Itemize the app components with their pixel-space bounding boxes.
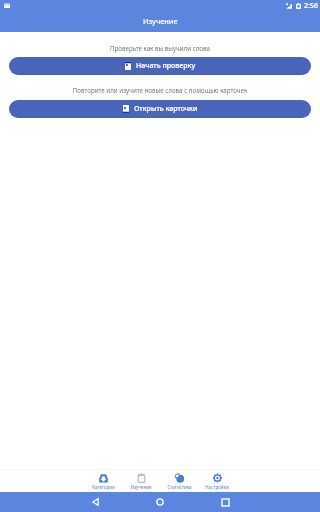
staticText: Статистика xyxy=(167,484,192,490)
button[interactable]: Настройки xyxy=(198,473,236,490)
staticText: Изучение xyxy=(143,16,178,26)
staticText: Настройки xyxy=(205,484,229,490)
staticText: Категории xyxy=(92,484,115,490)
staticText: Начать проверку xyxy=(136,61,196,71)
button[interactable]: Начать проверку xyxy=(9,57,311,75)
button[interactable]: Категории xyxy=(84,473,122,490)
button[interactable]: Back xyxy=(75,492,115,512)
button[interactable]: Открыть карточки xyxy=(9,100,311,118)
staticText: Проверьте как вы выучили слова xyxy=(0,44,320,52)
button[interactable]: Изучение xyxy=(122,473,160,490)
staticText: Открыть карточки xyxy=(134,104,198,114)
staticText: Изучение xyxy=(130,484,152,490)
button[interactable]: Статистика xyxy=(160,473,198,490)
staticText: 2:56 xyxy=(304,1,318,11)
staticText: Повторите или изучите новые слова с помо… xyxy=(0,86,320,94)
button[interactable]: Home xyxy=(140,492,180,512)
button[interactable]: Recents xyxy=(205,492,245,512)
